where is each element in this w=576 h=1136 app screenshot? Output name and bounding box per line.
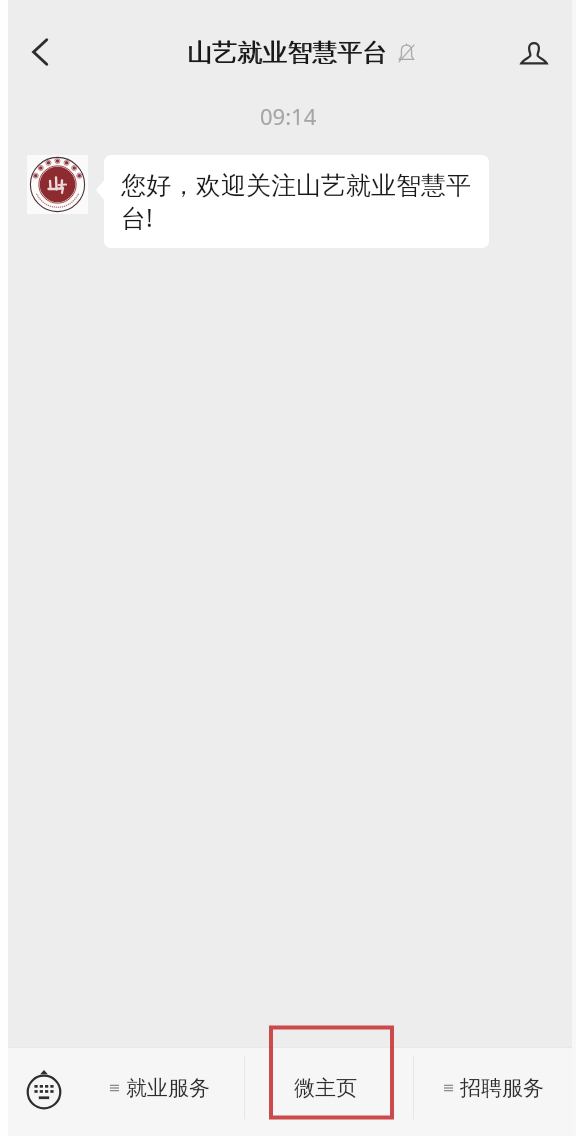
staticText: 就业服务 (126, 1075, 210, 1101)
staticText: 招聘服务 (460, 1075, 544, 1101)
button[interactable]: 您好，欢迎关注山艺就业智慧平台! (104, 155, 489, 248)
button[interactable]: Back (10, 22, 70, 82)
staticText: 微主页 (294, 1075, 357, 1101)
button[interactable]: 招聘服务 (414, 1048, 576, 1127)
button[interactable]: Keyboard (0, 1048, 78, 1127)
button[interactable]: 微主页 (245, 1048, 413, 1127)
button[interactable]: Avatar (27, 155, 88, 214)
staticText: 您好，欢迎关注山艺就业智慧平台! (121, 170, 475, 235)
staticText: 山艺就业智慧平台 (188, 37, 388, 68)
button[interactable]: 就业服务 (78, 1048, 244, 1127)
staticText: 山艺就业智慧平台 (187, 37, 387, 68)
staticText: 09:14 (260, 101, 317, 131)
button[interactable]: Profile (506, 24, 562, 80)
